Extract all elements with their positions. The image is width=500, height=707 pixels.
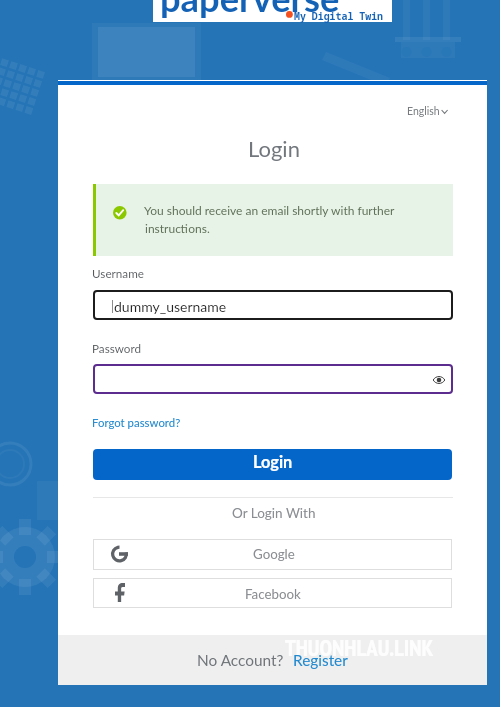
button[interactable]: Google [93,539,452,570]
staticText: Login [253,452,293,472]
staticText: No Account? [197,651,284,669]
staticText: THUONHLAU.LINK [285,633,434,662]
staticText: Password [92,341,142,355]
staticText: Login [248,135,300,161]
button[interactable]: Change language [404,98,450,118]
staticText: Facebook [245,586,301,602]
staticText: English [407,105,440,118]
staticText: My Digital Twin [294,9,384,22]
button[interactable]: Show password [93,364,453,394]
button[interactable]: Register [292,654,347,672]
staticText: dummy_username [114,298,227,315]
button[interactable]: Forgot password? [91,412,181,428]
button[interactable]: Login [93,449,452,480]
staticText: instructions. [145,221,210,235]
staticText: Google [253,546,295,562]
button[interactable]: Show password [430,372,448,388]
staticText: You should receive an email shortly with… [144,203,395,217]
button[interactable]: dummy_username [93,290,453,320]
staticText: Or Login With [232,505,316,521]
staticText: Register [293,651,348,669]
staticText: Forgot password? [92,416,181,430]
button[interactable]: Facebook [93,578,452,608]
staticText: paperverse [160,0,340,20]
staticText: Username [92,266,144,280]
